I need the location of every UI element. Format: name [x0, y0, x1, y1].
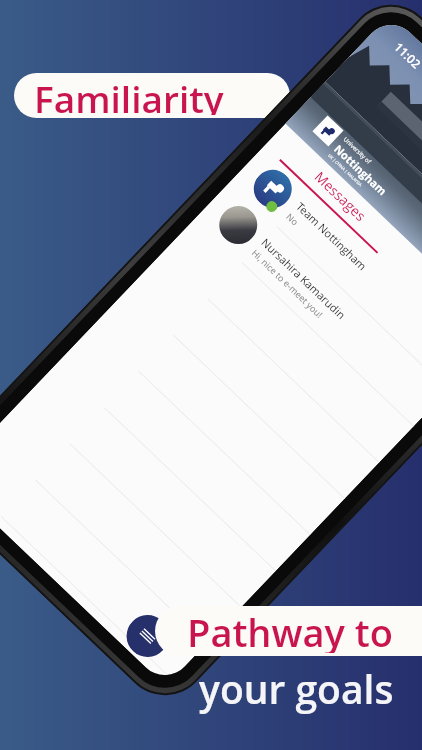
staticText: Nursahira Kamarudin — [259, 235, 349, 322]
button[interactable]: Pathway to — [155, 606, 422, 656]
staticText: Messages — [311, 167, 370, 225]
staticText: 11:02 — [391, 39, 422, 72]
button[interactable]: Team Nottingham — [229, 146, 422, 390]
staticText: Hi, nice to e-meet you! — [250, 246, 326, 320]
staticText: Familiarity — [34, 73, 224, 115]
staticText: UK | CHINA | MALAYSIA — [327, 153, 363, 187]
staticText: Nottingham — [331, 141, 390, 198]
button[interactable]: New message — [118, 606, 177, 666]
staticText: your goals — [199, 662, 394, 715]
staticText: Team Nottingham — [293, 199, 371, 274]
staticText: University of — [342, 135, 373, 166]
staticText: No — [284, 210, 302, 228]
button[interactable]: Nursahira Kamarudin — [195, 182, 422, 427]
staticText: Pathway to — [187, 606, 393, 653]
button[interactable]: Familiarity — [14, 73, 290, 118]
